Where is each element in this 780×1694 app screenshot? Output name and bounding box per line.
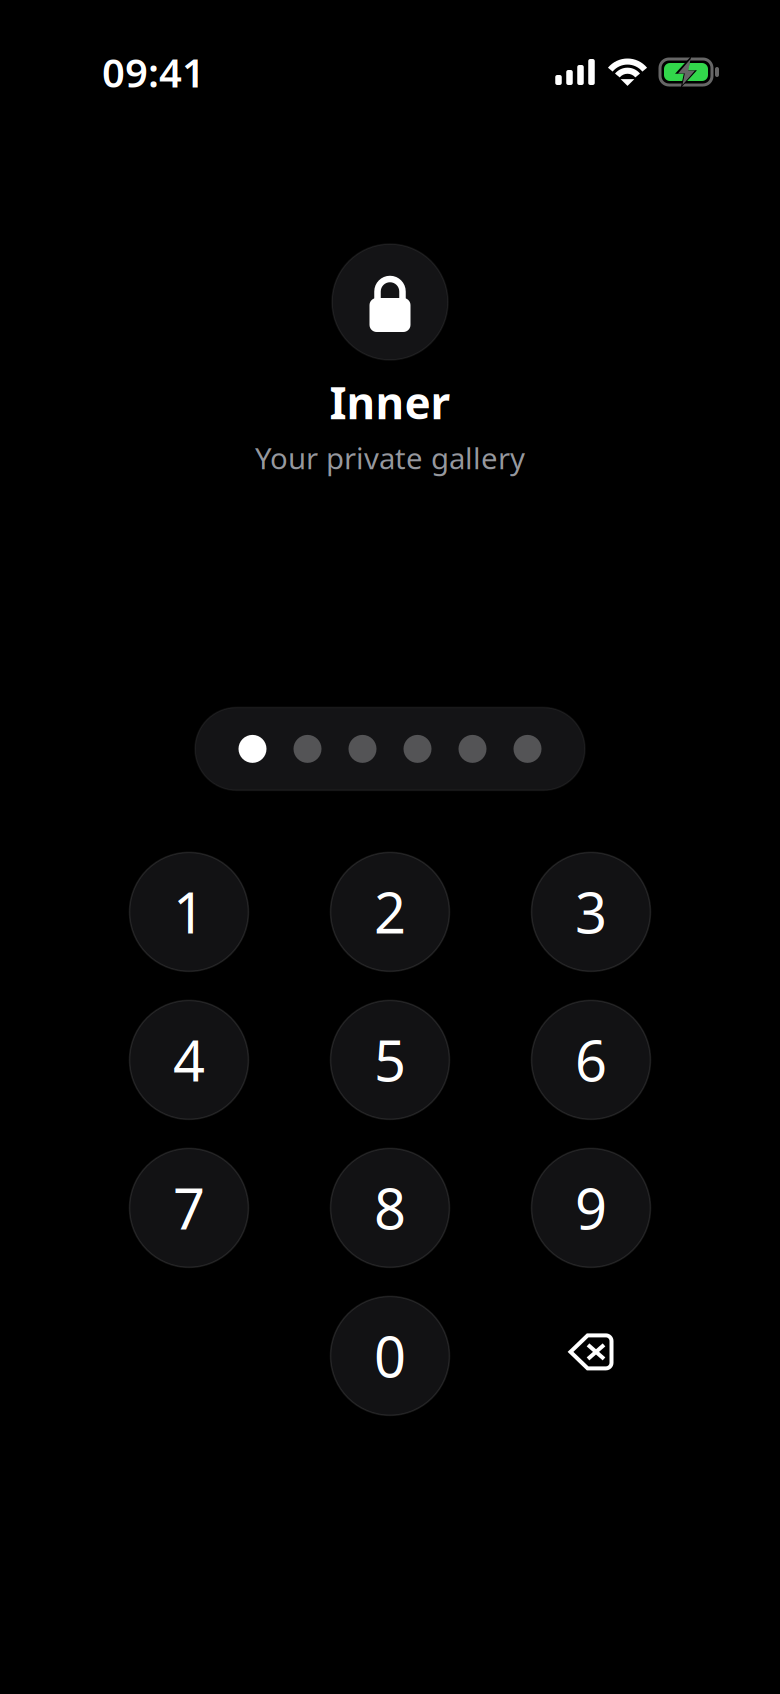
button[interactable]: 8	[330, 1148, 449, 1267]
button[interactable]: 3	[531, 852, 650, 971]
staticText: 0	[374, 1319, 406, 1393]
button[interactable]: 6	[531, 1000, 650, 1119]
staticText: 5	[374, 1023, 406, 1097]
button[interactable]: 9	[531, 1148, 650, 1267]
button[interactable]: 2	[330, 852, 449, 971]
button[interactable]: 1	[129, 852, 248, 971]
staticText: 09:41	[102, 45, 205, 98]
staticText: Your private gallery	[255, 438, 525, 477]
button[interactable]: Delete	[531, 1296, 650, 1415]
staticText: 3	[575, 875, 607, 949]
staticText: 1	[173, 875, 205, 949]
button[interactable]: 5	[330, 1000, 449, 1119]
button[interactable]: 0	[330, 1296, 449, 1415]
staticText: 9	[575, 1171, 607, 1245]
staticText: 8	[374, 1171, 406, 1245]
button[interactable]: 4	[129, 1000, 248, 1119]
button[interactable]: 7	[129, 1148, 248, 1267]
staticText: 6	[575, 1023, 607, 1097]
staticText: Inner	[329, 373, 450, 431]
staticText: 7	[173, 1171, 205, 1245]
staticText: 2	[374, 875, 406, 949]
staticText: 4	[173, 1023, 205, 1097]
